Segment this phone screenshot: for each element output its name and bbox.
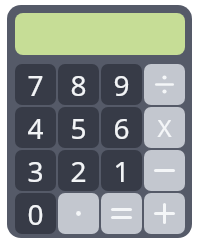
button[interactable]: 7 xyxy=(15,64,56,105)
staticText: 3 xyxy=(27,152,44,190)
staticText: X xyxy=(157,111,172,144)
staticText: 9 xyxy=(113,66,130,104)
button[interactable]: Equals xyxy=(101,193,142,234)
staticText: 8 xyxy=(70,66,87,104)
button[interactable]: Multiply xyxy=(144,107,185,148)
button[interactable]: 5 xyxy=(58,107,99,148)
button[interactable]: 4 xyxy=(15,107,56,148)
staticText: 7 xyxy=(27,66,44,104)
staticText: 4 xyxy=(27,109,44,147)
staticText: 2 xyxy=(70,152,87,190)
staticText: 6 xyxy=(113,109,130,147)
button[interactable]: 9 xyxy=(101,64,142,105)
staticText: 0 xyxy=(27,195,44,233)
button[interactable]: Display xyxy=(15,13,185,55)
button[interactable]: 2 xyxy=(58,150,99,191)
button[interactable]: 1 xyxy=(101,150,142,191)
button[interactable]: Plus xyxy=(144,193,185,234)
staticText: 1 xyxy=(113,152,130,190)
button[interactable]: Divide xyxy=(144,64,185,105)
button[interactable]: 0 xyxy=(15,193,56,234)
button[interactable]: 6 xyxy=(101,107,142,148)
staticText: 5 xyxy=(70,109,87,147)
button[interactable]: 3 xyxy=(15,150,56,191)
button[interactable]: 8 xyxy=(58,64,99,105)
button[interactable]: Minus xyxy=(144,150,185,191)
button[interactable]: Decimal point xyxy=(58,193,99,234)
